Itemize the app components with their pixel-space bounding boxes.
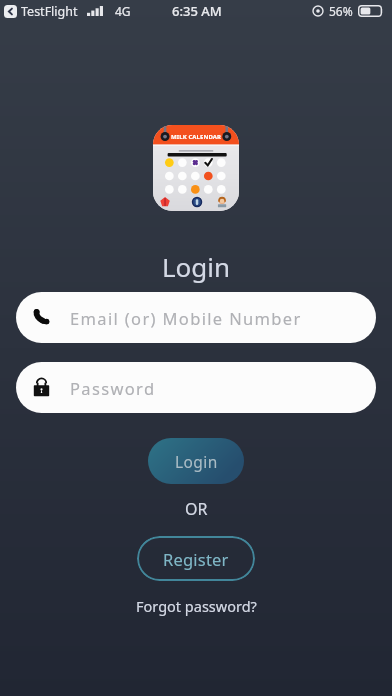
staticText: MILK CALENDAR <box>171 133 222 141</box>
staticText: OR <box>185 498 208 520</box>
staticText: 4G <box>115 3 131 19</box>
button[interactable]: Back <box>4 5 17 18</box>
button[interactable]: Password <box>16 362 376 413</box>
button[interactable]: Forgot password? <box>136 596 257 616</box>
staticText: Login <box>175 451 218 472</box>
staticText: 56% <box>329 3 353 19</box>
button[interactable]: Register <box>137 536 255 581</box>
button[interactable]: Login <box>148 438 244 484</box>
staticText: TestFlight <box>21 3 78 20</box>
staticText: Email (or) Mobile Number <box>70 307 302 329</box>
staticText: Register <box>163 548 229 570</box>
staticText: Login <box>162 249 231 284</box>
staticText: 6:35 AM <box>172 2 222 20</box>
staticText: Password <box>70 377 156 399</box>
button[interactable]: Email (or) Mobile Number <box>16 292 376 343</box>
